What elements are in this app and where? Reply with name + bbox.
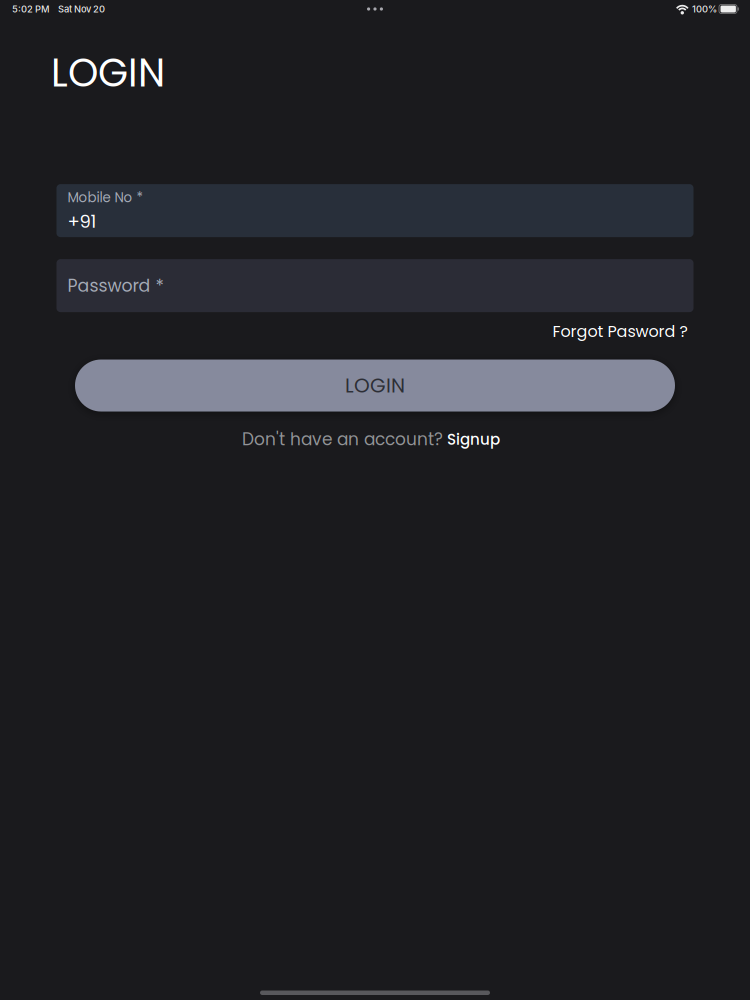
button[interactable]: Signup: [447, 429, 500, 450]
staticText: LOGIN: [51, 46, 165, 100]
staticText: Don't have an account?: [242, 427, 443, 451]
button[interactable]: Forgot Pasword ?: [552, 320, 687, 342]
button[interactable]: Password *: [56, 259, 693, 312]
button[interactable]: Mobile No *: [56, 184, 693, 237]
staticText: Password *: [67, 273, 163, 298]
staticText: 100%: [692, 3, 717, 15]
button[interactable]: LOGIN: [75, 359, 675, 411]
staticText: Mobile No *: [67, 188, 142, 207]
staticText: 5:02 PM: [12, 3, 50, 15]
staticText: Sat Nov 20: [58, 3, 105, 15]
staticText: Signup: [447, 429, 500, 450]
staticText: +91: [67, 209, 96, 234]
staticText: LOGIN: [345, 371, 405, 399]
staticText: Forgot Pasword ?: [552, 320, 687, 342]
